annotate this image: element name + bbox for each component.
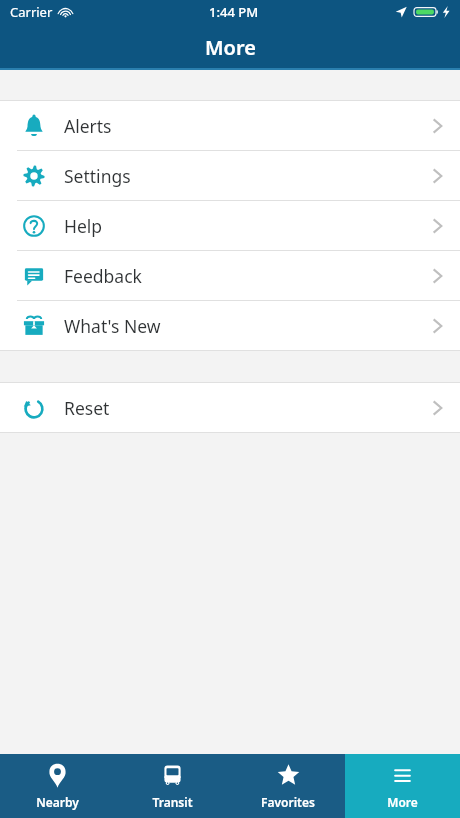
staticText: Favorites bbox=[261, 794, 315, 810]
button[interactable]: Feedback bbox=[0, 251, 460, 300]
button[interactable]: Reset bbox=[0, 383, 460, 432]
staticText: Alerts bbox=[64, 114, 112, 138]
staticText: Carrier bbox=[10, 3, 53, 21]
button[interactable]: Alerts bbox=[0, 101, 460, 150]
staticText: Settings bbox=[64, 164, 131, 188]
staticText: Feedback bbox=[64, 264, 142, 288]
staticText: More bbox=[205, 34, 256, 61]
staticText: Help bbox=[64, 214, 103, 238]
staticText: 1:44 PM bbox=[209, 3, 259, 21]
button[interactable]: Favorites bbox=[230, 754, 345, 818]
staticText: What's New bbox=[64, 314, 161, 338]
button[interactable]: Settings bbox=[0, 151, 460, 200]
button[interactable]: What's New bbox=[0, 301, 460, 350]
button[interactable]: Nearby bbox=[0, 754, 115, 818]
staticText: Reset bbox=[64, 396, 110, 420]
staticText: Transit bbox=[152, 794, 193, 810]
button[interactable]: Help bbox=[0, 201, 460, 250]
button[interactable]: Transit bbox=[115, 754, 230, 818]
button[interactable]: More bbox=[345, 754, 460, 818]
staticText: More bbox=[387, 794, 418, 810]
staticText: Nearby bbox=[36, 794, 79, 810]
